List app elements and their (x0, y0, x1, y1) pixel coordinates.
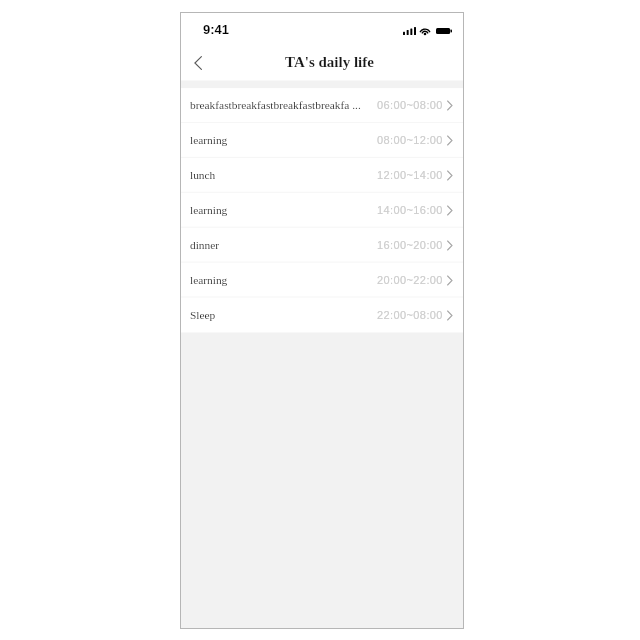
staticText: 06:00~08:00 (377, 99, 443, 111)
staticText: Sleep (190, 309, 377, 322)
staticText: 9:41 (203, 22, 230, 37)
staticText: TA's daily life (285, 54, 374, 71)
staticText: 08:00~12:00 (377, 134, 443, 146)
button[interactable]: dinner (181, 228, 463, 262)
staticText: learning (190, 134, 377, 147)
button[interactable]: learning (181, 263, 463, 297)
button[interactable]: Sleep (181, 298, 463, 332)
staticText: 20:00~22:00 (377, 274, 443, 286)
staticText: dinner (190, 239, 377, 252)
staticText: 14:00~16:00 (377, 204, 443, 216)
button[interactable]: lunch (181, 158, 463, 192)
button[interactable]: learning (181, 123, 463, 157)
button[interactable]: learning (181, 193, 463, 227)
staticText: learning (190, 204, 377, 217)
staticText: 22:00~08:00 (377, 309, 443, 321)
staticText: 12:00~14:00 (377, 169, 443, 181)
staticText: learning (190, 274, 377, 287)
button[interactable]: Back (185, 50, 211, 76)
staticText: 16:00~20:00 (377, 239, 443, 251)
staticText: lunch (190, 169, 377, 182)
button[interactable]: breakfastbreakfastbreakfastbreakfa ... (181, 88, 463, 122)
staticText: breakfastbreakfastbreakfastbreakfa ... (190, 99, 377, 112)
